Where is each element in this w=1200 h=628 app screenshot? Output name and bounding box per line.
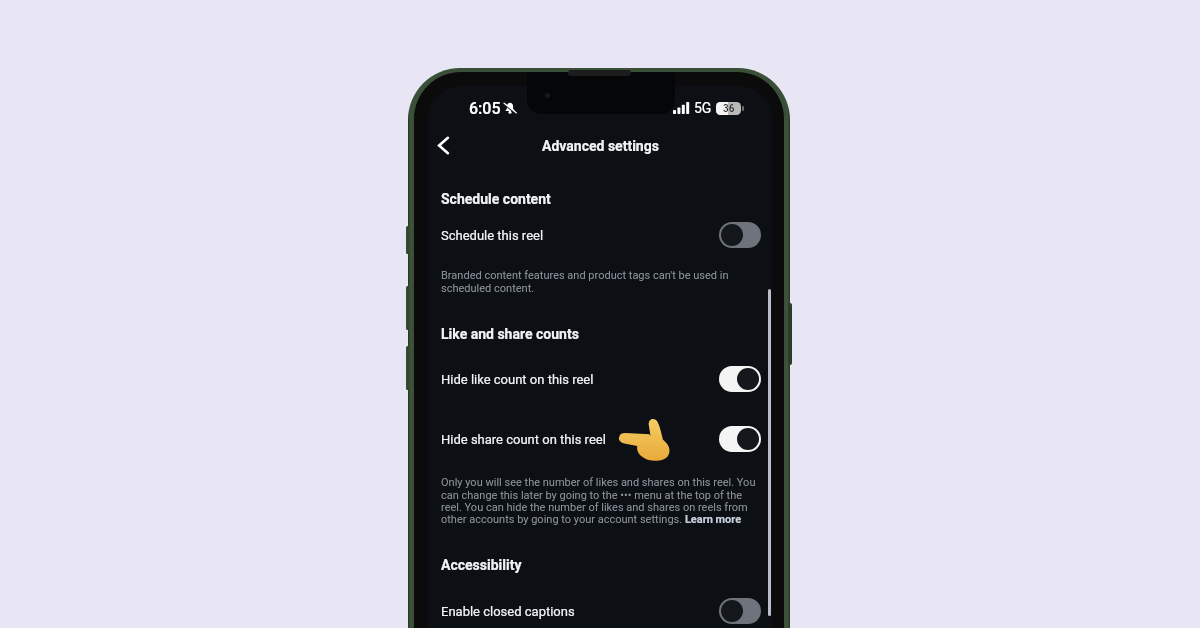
staticText: 6:05 (469, 99, 501, 118)
staticText: Advanced settings (542, 138, 659, 154)
button[interactable]: Toggle off (719, 598, 761, 624)
staticText: Schedule this reel (441, 228, 544, 243)
button[interactable]: Hide share count on this reel (428, 417, 772, 461)
button[interactable]: Toggle on (719, 426, 761, 452)
staticText: Accessibility (441, 557, 522, 573)
staticText: Branded content features and product tag… (441, 269, 735, 295)
staticText: Like and share counts (441, 326, 579, 342)
button[interactable]: Toggle off (719, 222, 761, 248)
staticText: Enable closed captions (441, 604, 575, 619)
staticText: 36 (723, 103, 735, 115)
staticText: Hide like count on this reel (441, 372, 594, 387)
staticText: Hide share count on this reel (441, 432, 606, 447)
button[interactable]: Toggle on (719, 366, 761, 392)
button[interactable]: Hide like count on this reel (428, 357, 772, 401)
button[interactable]: Enable closed captions (428, 589, 772, 628)
button[interactable]: Back (428, 130, 458, 160)
staticText: 5G (694, 100, 712, 116)
staticText: Schedule content (441, 191, 551, 207)
button[interactable]: Schedule this reel (428, 213, 772, 257)
staticText: Only you will see the number of likes an… (441, 476, 762, 525)
